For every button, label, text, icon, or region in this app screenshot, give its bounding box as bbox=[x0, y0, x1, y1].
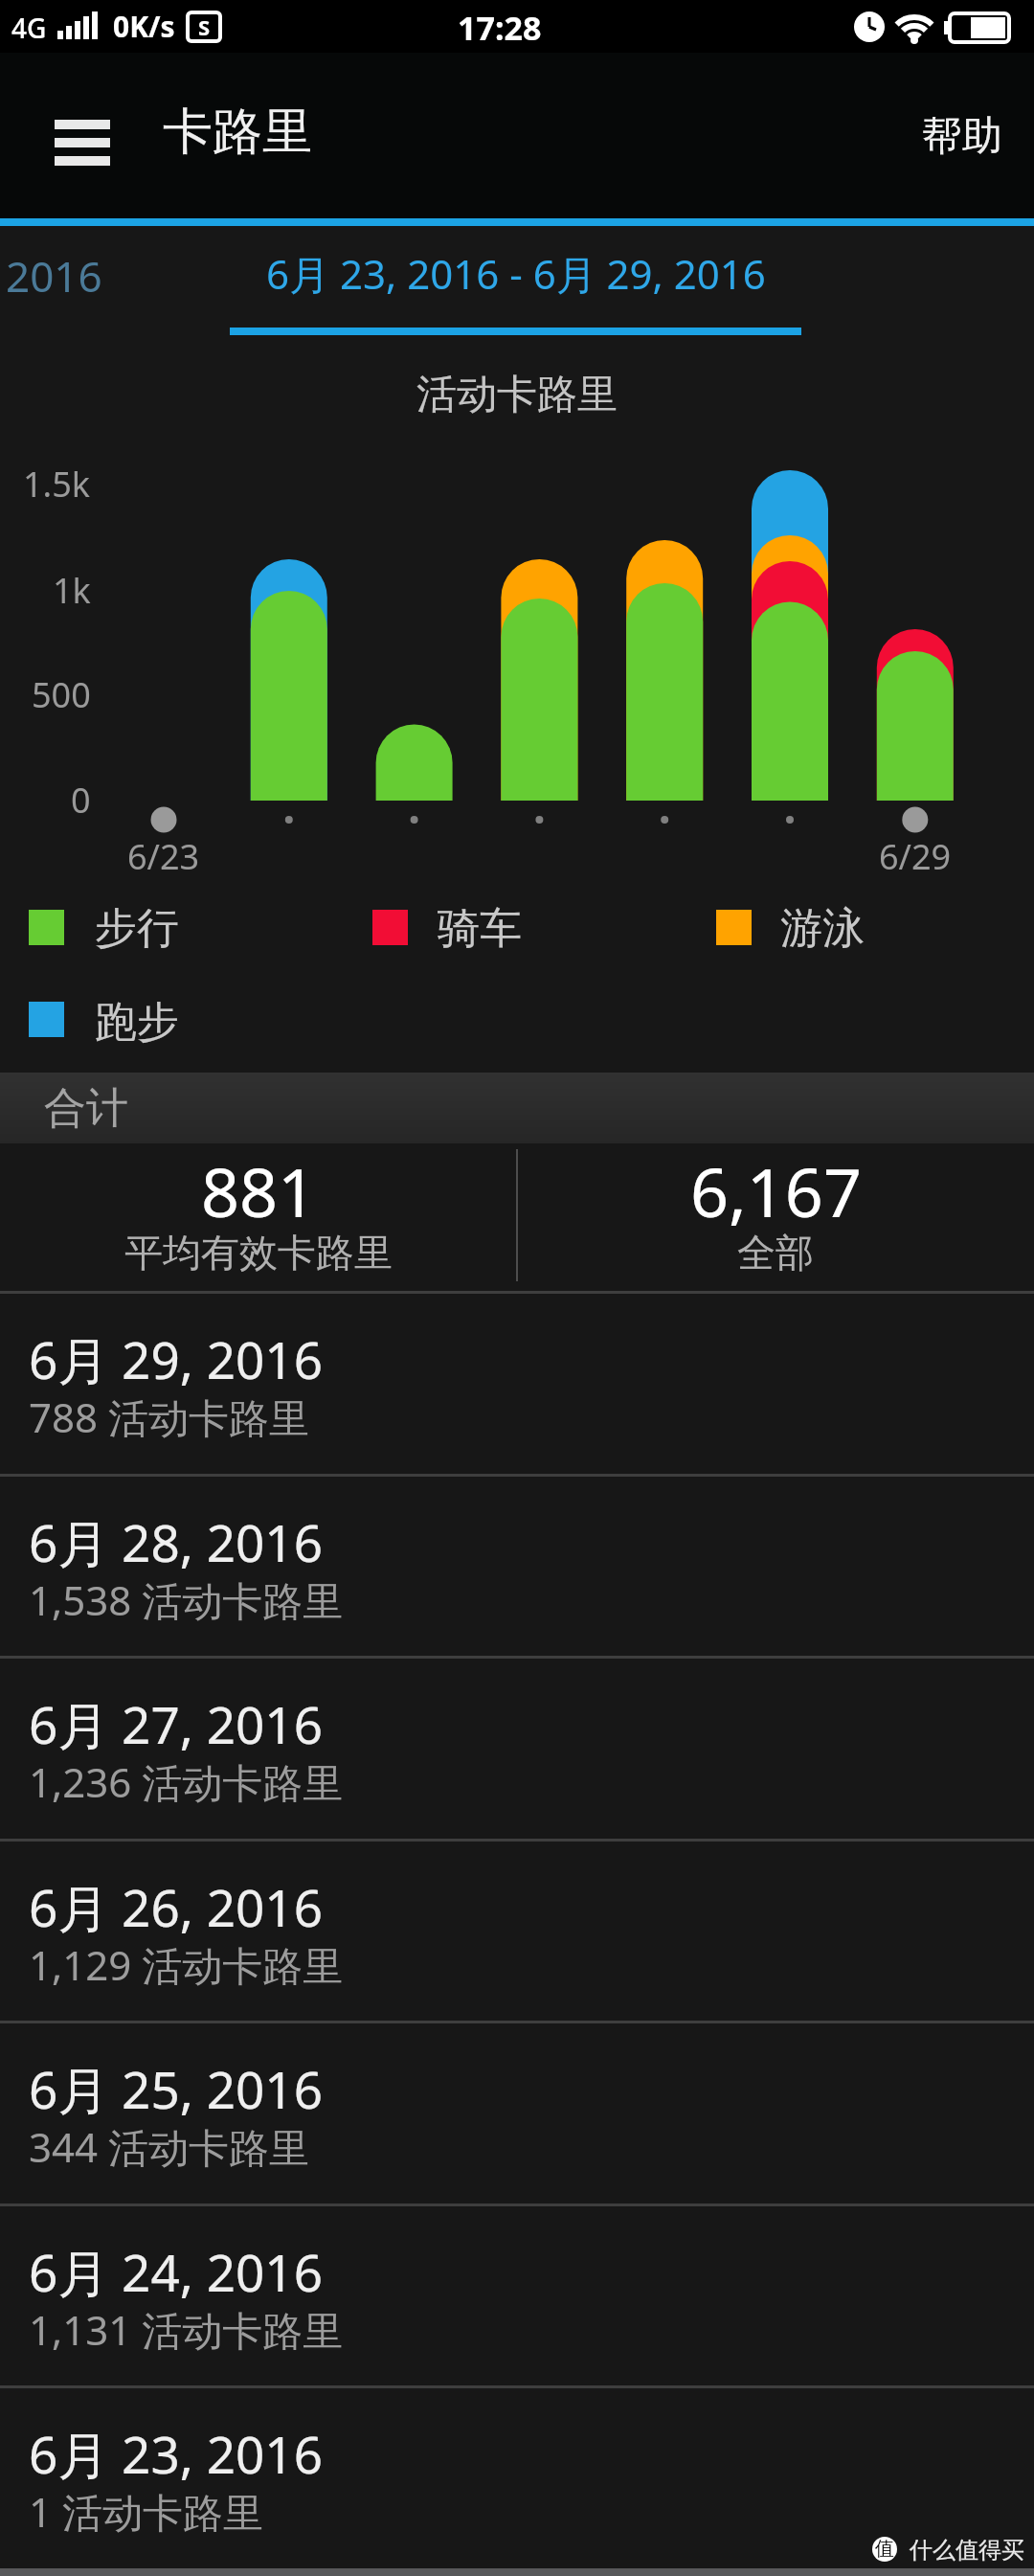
button[interactable]: 6月 27, 2016 bbox=[0, 1659, 1034, 1839]
staticText: 1,129 活动卡路里 bbox=[29, 1937, 344, 1992]
staticText: 6,167 bbox=[690, 1145, 862, 1236]
button[interactable]: 6月 24, 2016 bbox=[0, 2206, 1034, 2386]
staticText: 1.5k bbox=[23, 461, 91, 508]
staticText: 0 bbox=[71, 777, 91, 824]
staticText: 6/23 bbox=[127, 833, 200, 880]
staticText: 6月 23, 2016 bbox=[29, 2419, 323, 2488]
staticText: 6月 25, 2016 bbox=[29, 2054, 323, 2123]
staticText: 合计 bbox=[44, 1082, 128, 1135]
button[interactable] bbox=[29, 96, 134, 182]
staticText: 344 活动卡路里 bbox=[29, 2119, 309, 2174]
staticText: 什么值得买 bbox=[910, 2536, 1024, 2565]
staticText: 1,131 活动卡路里 bbox=[29, 2302, 344, 2357]
staticText: 1,538 活动卡路里 bbox=[29, 1572, 344, 1627]
staticText: 骑车 bbox=[438, 902, 522, 955]
staticText: 17:28 bbox=[458, 6, 542, 50]
staticText: 881 bbox=[201, 1145, 317, 1236]
staticText: 2016 bbox=[6, 247, 102, 305]
staticText: S bbox=[198, 12, 211, 41]
staticText: 6月 23, 2016 - 6月 29, 2016 bbox=[266, 246, 766, 301]
staticText: 6月 28, 2016 bbox=[29, 1507, 323, 1576]
staticText: 卡路里 bbox=[163, 101, 312, 164]
button[interactable]: 6月 26, 2016 bbox=[0, 1842, 1034, 2022]
button[interactable]: 6月 23, 2016 bbox=[0, 2388, 1034, 2568]
staticText: 788 活动卡路里 bbox=[29, 1390, 309, 1444]
staticText: 6月 27, 2016 bbox=[29, 1689, 323, 1758]
staticText: 游泳 bbox=[780, 902, 865, 955]
button[interactable]: 2016 bbox=[6, 247, 102, 305]
staticText: 跑步 bbox=[95, 996, 179, 1049]
staticText: 4G bbox=[11, 10, 47, 46]
staticText: 6/29 bbox=[879, 833, 952, 880]
staticText: 帮助 bbox=[922, 111, 1002, 162]
staticText: 6月 26, 2016 bbox=[29, 1872, 323, 1941]
staticText: 500 bbox=[32, 671, 91, 718]
button[interactable]: 帮助 bbox=[890, 91, 1034, 182]
button[interactable]: 6月 23, 2016 - 6月 29, 2016 bbox=[230, 246, 801, 301]
staticText: 步行 bbox=[95, 902, 179, 955]
staticText: 6月 24, 2016 bbox=[29, 2237, 323, 2306]
staticText: 1 活动卡路里 bbox=[29, 2484, 263, 2539]
staticText: 活动卡路里 bbox=[416, 370, 618, 420]
button[interactable]: 6月 25, 2016 bbox=[0, 2023, 1034, 2203]
staticText: 0K/s bbox=[113, 7, 175, 46]
staticText: 平均有效卡路里 bbox=[124, 1229, 393, 1277]
staticText: 1,236 活动卡路里 bbox=[29, 1754, 344, 1809]
button[interactable]: 6月 28, 2016 bbox=[0, 1477, 1034, 1657]
staticText: 全部 bbox=[737, 1229, 814, 1277]
staticText: 6月 29, 2016 bbox=[29, 1324, 323, 1393]
staticText: 值 bbox=[875, 2537, 894, 2561]
staticText: 1k bbox=[53, 567, 91, 614]
button[interactable]: 6月 29, 2016 bbox=[0, 1294, 1034, 1474]
